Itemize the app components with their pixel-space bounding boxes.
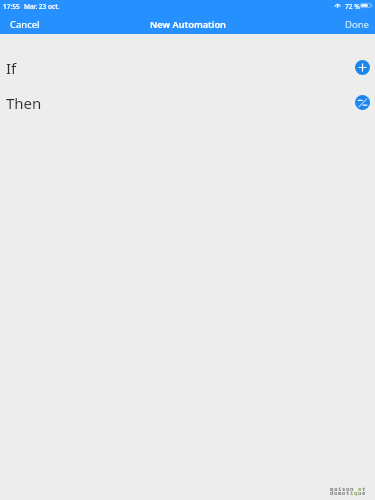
button[interactable]: Done xyxy=(345,18,369,31)
staticText: maison et xyxy=(330,485,367,493)
staticText: 72 % xyxy=(345,2,360,11)
button[interactable]: Add action xyxy=(355,95,370,110)
staticText: If xyxy=(6,58,17,78)
staticText: Cancel xyxy=(10,18,40,31)
staticText: 17:55 xyxy=(3,2,20,11)
button[interactable]: Cancel xyxy=(10,18,40,31)
staticText: Then xyxy=(6,93,42,113)
staticText: Mar. 23 oct. xyxy=(24,2,60,11)
staticText: domotique xyxy=(330,489,367,497)
button[interactable]: Add condition xyxy=(355,60,370,75)
staticText: Done xyxy=(345,18,369,31)
staticText: New Automation xyxy=(150,18,226,31)
